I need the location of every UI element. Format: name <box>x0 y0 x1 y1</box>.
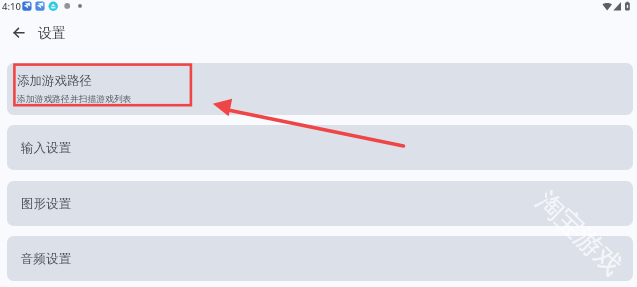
button[interactable]: 音频设置 <box>7 236 633 281</box>
staticText: 输入设置 <box>21 140 71 156</box>
staticText: 添加游戏路径并扫描游戏列表 <box>17 94 132 105</box>
button[interactable]: 添加游戏路径 <box>7 63 633 115</box>
staticText: 4:10 <box>2 0 21 13</box>
staticText: 淘宝游戏 <box>530 184 629 281</box>
staticText: 音频设置 <box>21 251 71 267</box>
staticText: 设置 <box>38 25 66 43</box>
staticText: 添加游戏路径 <box>17 73 92 89</box>
button[interactable]: Back <box>7 21 30 44</box>
button[interactable]: 输入设置 <box>7 125 633 170</box>
button[interactable]: 图形设置 <box>7 181 633 226</box>
staticText: 图形设置 <box>21 196 71 212</box>
